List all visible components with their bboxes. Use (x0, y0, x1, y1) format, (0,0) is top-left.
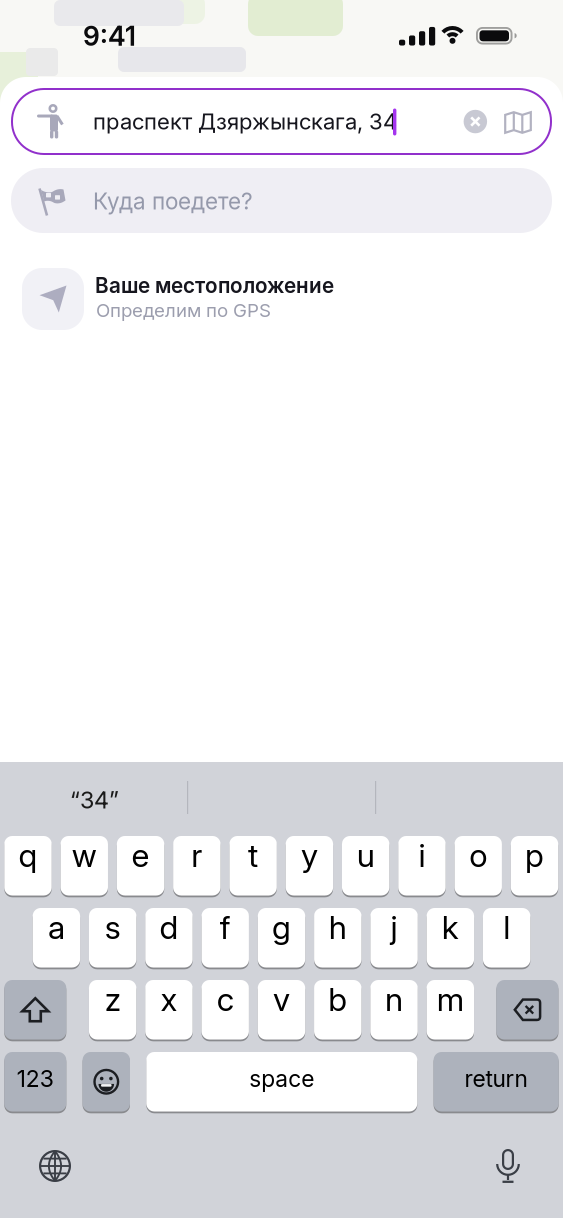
staticText: p (525, 836, 544, 875)
staticText: v (273, 980, 290, 1019)
staticText: r (191, 836, 202, 875)
staticText: m (437, 980, 464, 1019)
button[interactable]: Next keyboard (39, 1150, 71, 1182)
staticText: e (132, 836, 150, 875)
button[interactable]: Ваше местоположение (11, 268, 552, 330)
staticText: Куда поедете? (93, 187, 253, 215)
staticText: g (272, 908, 291, 947)
button[interactable]: return (0, 762, 125, 821)
staticText: x (160, 980, 177, 1019)
staticText: “34” (70, 786, 119, 814)
staticText: i (418, 836, 425, 875)
staticText: o (469, 836, 487, 875)
staticText: c (217, 980, 234, 1019)
staticText: s (105, 908, 121, 947)
staticText: Определим по GPS (96, 299, 271, 322)
button[interactable]: Выбрать на карте (504, 111, 532, 134)
button[interactable]: Dictation (496, 1149, 520, 1183)
staticText: q (18, 836, 37, 875)
staticText: t (248, 836, 258, 875)
button[interactable]: Куда поедете? (11, 168, 552, 233)
button[interactable]: Очистить (464, 110, 487, 133)
staticText: праспект Дзяржынскага, 34 (93, 108, 397, 135)
staticText: 123 (17, 1065, 54, 1093)
staticText: y (301, 836, 318, 875)
staticText: b (328, 980, 347, 1019)
staticText: space (249, 1065, 314, 1093)
staticText: h (329, 908, 347, 947)
staticText: d (159, 908, 178, 947)
staticText: w (72, 836, 97, 875)
staticText: Ваше местоположение (95, 273, 334, 298)
staticText: return (465, 1065, 528, 1093)
staticText: n (385, 980, 403, 1019)
button[interactable]: space (0, 762, 271, 821)
staticText: j (391, 908, 398, 947)
staticText: f (220, 908, 231, 947)
staticText: a (48, 908, 65, 947)
staticText: k (442, 908, 459, 947)
staticText: 9:41 (83, 20, 136, 52)
staticText: u (357, 836, 375, 875)
staticText: l (503, 908, 510, 947)
staticText: z (105, 980, 121, 1019)
